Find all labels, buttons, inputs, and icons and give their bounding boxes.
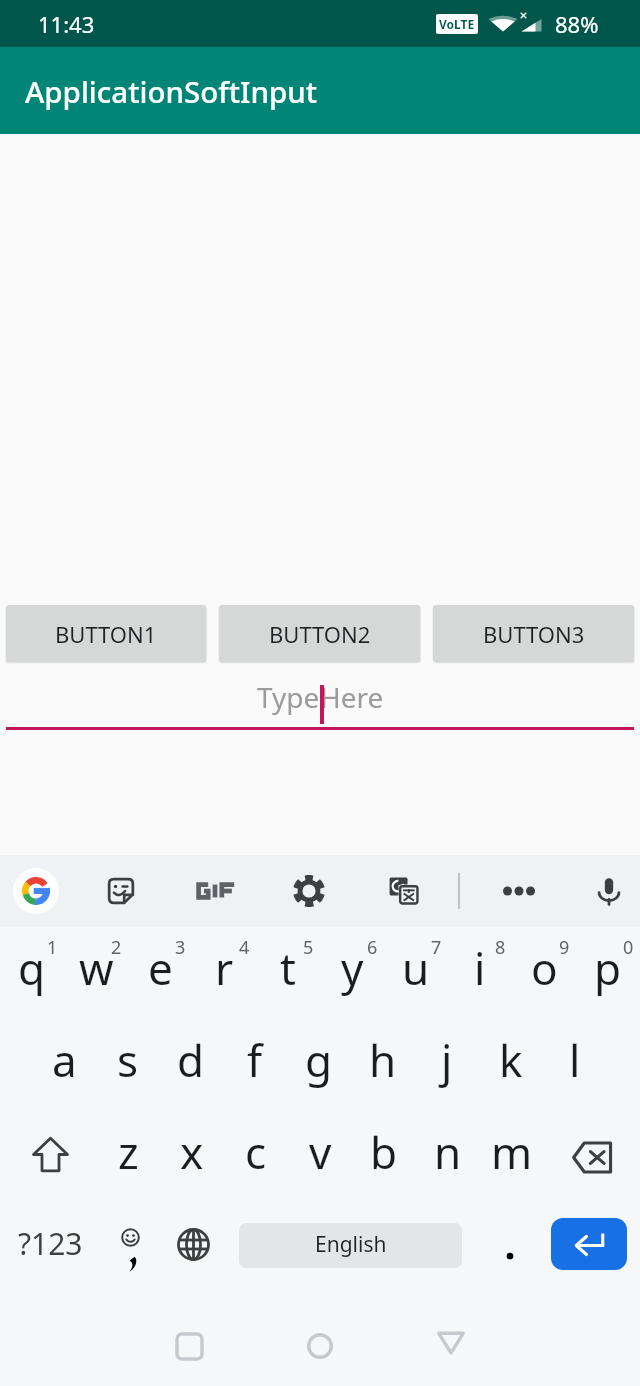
staticText: 6 bbox=[367, 935, 378, 960]
button[interactable]: BUTTON1 bbox=[6, 605, 206, 662]
staticText: 11:43 bbox=[38, 9, 95, 39]
staticText: x bbox=[180, 1122, 204, 1182]
staticText: m bbox=[491, 1122, 533, 1182]
staticText: 8 bbox=[495, 935, 506, 960]
staticText: f bbox=[247, 1030, 263, 1090]
button[interactable]: Settings bbox=[286, 868, 332, 914]
staticText: k bbox=[499, 1030, 523, 1090]
staticText: 9 bbox=[559, 935, 570, 960]
staticText: g bbox=[305, 1030, 333, 1090]
button[interactable]: Back bbox=[421, 1312, 481, 1372]
button[interactable]: j bbox=[415, 1019, 479, 1111]
button[interactable]: Translate bbox=[381, 868, 427, 914]
button[interactable]: Recent apps bbox=[159, 1316, 219, 1376]
staticText: Here bbox=[320, 678, 384, 716]
button[interactable]: y bbox=[320, 927, 384, 1019]
button[interactable]: Shift bbox=[0, 1111, 96, 1203]
button[interactable]: t bbox=[256, 927, 320, 1019]
button[interactable]: n bbox=[416, 1111, 480, 1203]
staticText: i bbox=[474, 938, 486, 998]
button[interactable]: l bbox=[543, 1019, 607, 1111]
staticText: d bbox=[177, 1030, 205, 1090]
button[interactable]: b bbox=[352, 1111, 416, 1203]
button[interactable]: g bbox=[287, 1019, 351, 1111]
staticText: 2 bbox=[111, 935, 122, 960]
button[interactable]: Stickers bbox=[98, 868, 144, 914]
staticText: 0 bbox=[623, 935, 634, 960]
staticText: ?123 bbox=[18, 1223, 83, 1264]
button[interactable]: h bbox=[351, 1019, 415, 1111]
button[interactable]: e bbox=[128, 927, 192, 1019]
staticText: 3 bbox=[175, 935, 186, 960]
button[interactable] bbox=[478, 1203, 544, 1295]
button[interactable]: r bbox=[192, 927, 256, 1019]
staticText: t bbox=[280, 938, 296, 998]
button[interactable]: p bbox=[576, 927, 640, 1019]
button[interactable]: Home bbox=[290, 1316, 350, 1376]
staticText: v bbox=[309, 1122, 332, 1182]
staticText: 4 bbox=[239, 935, 250, 960]
staticText: 88% bbox=[555, 9, 599, 39]
staticText: j bbox=[441, 1030, 453, 1090]
button[interactable]: u bbox=[384, 927, 448, 1019]
staticText: a bbox=[52, 1030, 77, 1090]
staticText: p bbox=[594, 938, 622, 998]
button[interactable]: More options bbox=[495, 867, 543, 915]
button[interactable]: BUTTON2 bbox=[219, 605, 420, 662]
button[interactable]: i bbox=[448, 927, 512, 1019]
button[interactable]: k bbox=[479, 1019, 543, 1111]
staticText: VoLTE bbox=[439, 16, 475, 32]
button[interactable]: q bbox=[0, 927, 64, 1019]
button[interactable]: Emoji bbox=[100, 1203, 162, 1295]
staticText: n bbox=[434, 1122, 462, 1182]
button[interactable]: c bbox=[224, 1111, 288, 1203]
staticText: w bbox=[79, 938, 114, 998]
button[interactable]: Backspace bbox=[544, 1111, 640, 1203]
staticText: z bbox=[118, 1122, 139, 1182]
staticText: e bbox=[148, 938, 173, 998]
button[interactable]: f bbox=[223, 1019, 287, 1111]
staticText: c bbox=[245, 1122, 267, 1182]
button[interactable]: Voice input bbox=[586, 868, 632, 914]
button[interactable]: d bbox=[159, 1019, 223, 1111]
staticText: u bbox=[402, 938, 430, 998]
staticText: b bbox=[370, 1122, 398, 1182]
button[interactable]: ?123 bbox=[0, 1203, 100, 1295]
button[interactable]: o bbox=[512, 927, 576, 1019]
staticText: 7 bbox=[431, 935, 442, 960]
button[interactable]: w bbox=[64, 927, 128, 1019]
staticText: q bbox=[18, 938, 46, 998]
staticText: Type bbox=[257, 678, 320, 716]
staticText: BUTTON1 bbox=[55, 619, 157, 649]
staticText: y bbox=[341, 938, 364, 998]
button[interactable]: BUTTON3 bbox=[433, 605, 634, 662]
staticText: r bbox=[215, 938, 234, 998]
button[interactable]: Enter bbox=[551, 1218, 627, 1270]
staticText: ApplicationSoftInput bbox=[25, 71, 318, 111]
staticText: English bbox=[315, 1230, 387, 1259]
staticText: 5 bbox=[303, 935, 314, 960]
button[interactable]: m bbox=[480, 1111, 544, 1203]
button[interactable]: s bbox=[96, 1019, 159, 1111]
staticText: 1 bbox=[47, 935, 58, 960]
button[interactable]: Change language bbox=[162, 1203, 224, 1295]
staticText: o bbox=[531, 938, 558, 998]
button[interactable]: z bbox=[96, 1111, 160, 1203]
staticText: l bbox=[569, 1030, 581, 1090]
button[interactable]: x bbox=[160, 1111, 224, 1203]
staticText: h bbox=[369, 1030, 397, 1090]
button[interactable]: English bbox=[239, 1223, 462, 1268]
button[interactable]: v bbox=[288, 1111, 352, 1203]
button[interactable]: Google Search bbox=[13, 868, 59, 914]
staticText: BUTTON3 bbox=[483, 619, 585, 649]
button[interactable] bbox=[190, 867, 238, 915]
button[interactable]: a bbox=[33, 1019, 96, 1111]
staticText: s bbox=[117, 1030, 139, 1090]
staticText: BUTTON2 bbox=[269, 619, 371, 649]
